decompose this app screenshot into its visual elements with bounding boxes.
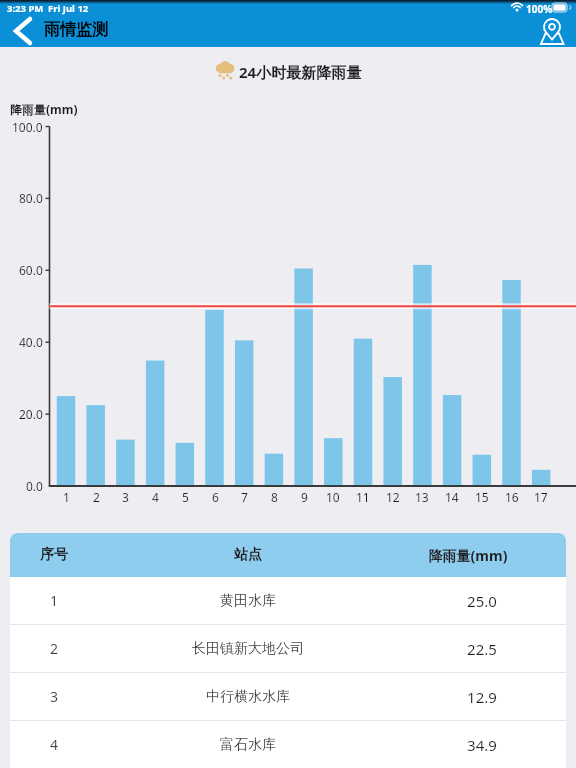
staticText: 80.0 (19, 190, 43, 206)
staticText: 0.0 (26, 478, 43, 494)
staticText: 序号 (10, 546, 98, 564)
staticText: 7 (241, 489, 248, 505)
button[interactable]: 2 (10, 625, 566, 672)
button[interactable]: 1 (10, 577, 566, 624)
staticText: 17 (534, 489, 548, 505)
staticText: 13 (415, 489, 429, 505)
staticText: 8 (271, 489, 278, 505)
staticText: 20.0 (19, 406, 43, 422)
staticText: 14 (445, 489, 459, 505)
staticText: 5 (182, 489, 189, 505)
staticText: 雨情监测 (44, 20, 108, 40)
staticText: 站点 (98, 546, 398, 564)
staticText: 40.0 (19, 334, 43, 350)
staticText: 12 (386, 489, 400, 505)
staticText: 1 (63, 489, 70, 505)
staticText: 降雨量(mm) (10, 101, 78, 117)
staticText: 2 (10, 639, 98, 658)
staticText: 3 (10, 687, 98, 706)
staticText: 3:23 PM (7, 2, 44, 15)
staticText: 富石水库 (98, 736, 398, 754)
staticText: 100.0 (12, 119, 43, 135)
staticText: 22.5 (398, 639, 566, 659)
staticText: 1 (10, 591, 98, 610)
staticText: 60.0 (19, 262, 43, 278)
staticText: 4 (152, 489, 159, 505)
staticText: 10 (326, 489, 340, 505)
staticText: 15 (475, 489, 489, 505)
staticText: 12.9 (398, 687, 566, 707)
button[interactable] (538, 16, 566, 46)
staticText: 2 (93, 489, 100, 505)
staticText: Fri Jul 12 (48, 2, 89, 15)
staticText: 长田镇新大地公司 (98, 640, 398, 658)
staticText: 34.9 (398, 735, 566, 755)
staticText: 100% (526, 2, 553, 16)
button[interactable]: 序号 (10, 533, 566, 577)
staticText: 24小时最新降雨量 (239, 62, 362, 82)
staticText: 4 (10, 735, 98, 754)
staticText: 11 (356, 489, 370, 505)
staticText: 3 (122, 489, 129, 505)
staticText: 黄田水库 (98, 592, 398, 610)
staticText: 中行横水水库 (98, 688, 398, 706)
staticText: 降雨量(mm) (384, 546, 552, 565)
staticText: 6 (212, 489, 219, 505)
staticText: 16 (505, 489, 519, 505)
staticText: 9 (301, 489, 308, 505)
button[interactable]: 4 (10, 721, 566, 768)
button[interactable] (6, 14, 40, 46)
button[interactable]: 3 (10, 673, 566, 720)
staticText: 25.0 (398, 591, 566, 611)
